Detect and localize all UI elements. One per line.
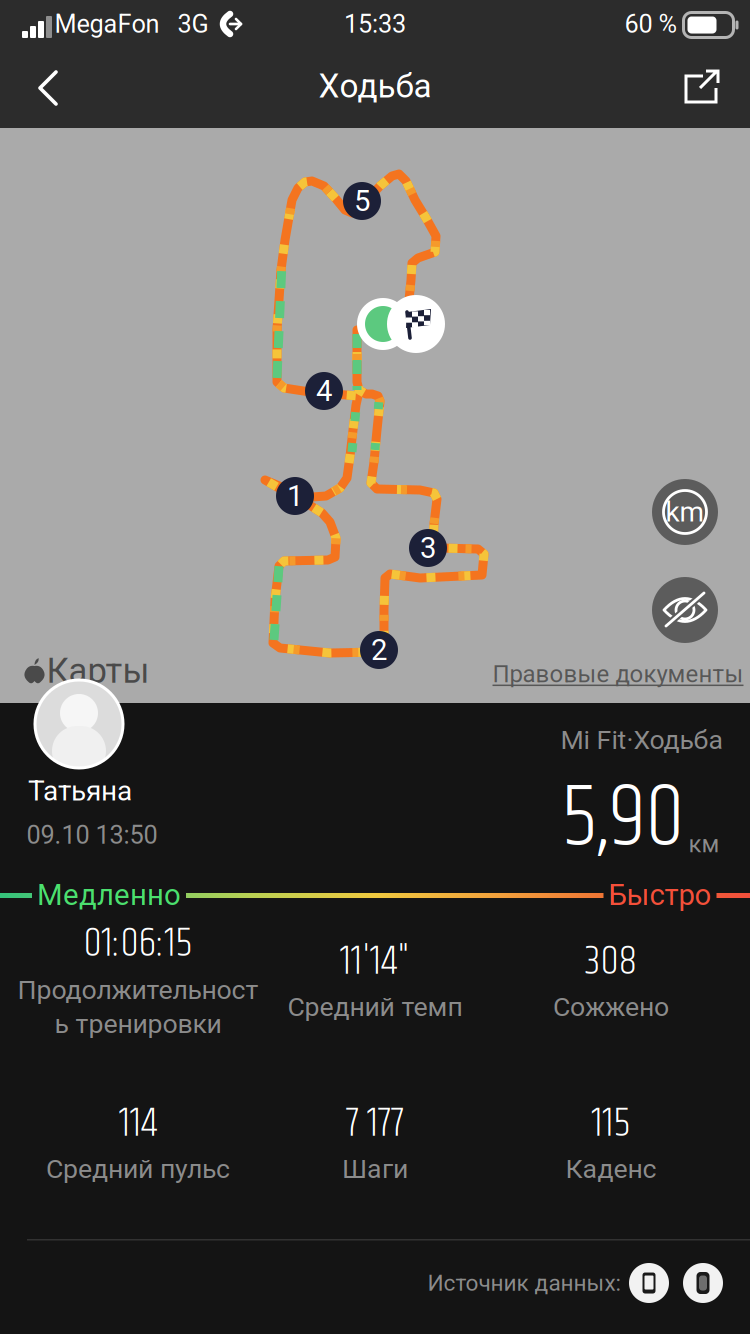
staticText: Источник данных: [427, 1270, 620, 1296]
staticText: 1 [287, 479, 303, 513]
staticText: MegaFon [54, 9, 159, 39]
staticText: 09.10 13:50 [26, 820, 157, 850]
staticText: ь тренировки [54, 1008, 221, 1040]
staticText: км [688, 830, 719, 858]
staticText: Сожжено [553, 991, 669, 1023]
staticText: 2 [371, 633, 387, 667]
staticText: 308 [584, 930, 637, 994]
staticText: 114 [119, 1092, 157, 1156]
staticText: 3G [177, 9, 208, 39]
staticText: Средний темп [287, 991, 462, 1023]
button[interactable]: Правовые документы [492, 660, 743, 688]
staticText: 7 177 [346, 1092, 404, 1156]
staticText: Быстро [608, 878, 711, 912]
staticText: 5,90 [561, 753, 684, 887]
staticText: Шаги [342, 1153, 408, 1185]
staticText: Правовые документы [492, 660, 743, 688]
staticText: km [665, 496, 704, 528]
staticText: Ходьба [318, 66, 431, 106]
staticText: 5 [354, 184, 370, 218]
staticText: 11'14" [340, 930, 410, 994]
button[interactable]: Distance units [652, 479, 718, 545]
button[interactable]: Share [666, 50, 738, 122]
staticText: Медленно [37, 878, 181, 912]
staticText: Татьяна [28, 775, 132, 807]
staticText: Mi Fit·Ходьба [560, 724, 723, 756]
staticText: 4 [316, 374, 332, 408]
staticText: Продолжительност [17, 974, 258, 1006]
staticText: 01:06:15 [83, 912, 192, 976]
staticText: Каденс [565, 1153, 656, 1185]
button[interactable]: Phone data source [627, 1261, 671, 1305]
button[interactable]: Hide route [652, 577, 718, 643]
staticText: Карты [46, 651, 149, 691]
staticText: 15:33 [344, 9, 406, 39]
staticText: 3 [420, 531, 436, 565]
button[interactable]: Back [10, 50, 86, 126]
staticText: 115 [591, 1092, 630, 1156]
staticText: 60 % [624, 9, 677, 39]
button[interactable]: Watch data source [681, 1261, 725, 1305]
staticText: Средний пульс [46, 1153, 230, 1185]
